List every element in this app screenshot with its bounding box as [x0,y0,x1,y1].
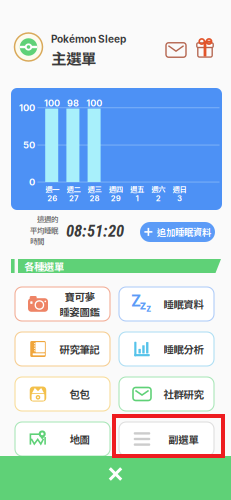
staticText: z [139,298,146,312]
staticText: 100 [86,98,102,109]
button[interactable]: 地圖 [15,422,110,456]
staticText: 3 [177,194,182,203]
staticText: 1 [135,194,138,203]
staticText: 寶可夢 [64,289,94,304]
staticText: 週六 [151,184,165,194]
staticText: 週二 [66,184,80,194]
staticText: 地圖 [69,431,89,447]
button[interactable]: Close [0,456,231,500]
staticText: 睡姿圖鑑 [59,304,99,319]
staticText: 包包 [69,386,89,402]
button[interactable]: 研究筆記 [15,332,110,366]
staticText: 週一 [45,184,59,194]
staticText: 28 [90,194,100,203]
staticText: 平均睡眠時間 [30,225,58,246]
button[interactable]: Gifts [194,38,216,60]
staticText: 研究筆記 [59,341,99,357]
staticText: 週三 [88,184,102,194]
staticText: 週四 [109,184,123,194]
staticText: 27 [69,194,78,203]
staticText: 副選單 [168,431,198,447]
button[interactable]: 追加睡眠資料 [140,222,215,242]
staticText: 50 [23,139,35,151]
staticText: 週日 [172,184,186,194]
staticText: 睡眠分析 [163,341,203,357]
staticText: 29 [111,194,121,203]
staticText: 26 [47,194,57,203]
button[interactable]: 副選單 [119,422,214,456]
staticText: 週五 [130,184,144,194]
button[interactable]: 包包 [15,377,110,411]
staticText: 98 [67,98,79,109]
button[interactable]: Mail [163,39,189,61]
staticText: 睡眠資料 [163,296,203,312]
staticText: 0 [29,176,35,188]
button[interactable]: Z [119,287,214,321]
button[interactable]: 寶可夢 [15,287,110,321]
staticText: 追加睡眠資料 [157,225,211,239]
staticText: 08:51:20 [66,221,124,241]
staticText: 主選單 [51,47,96,69]
staticText: 這週的 [37,213,58,224]
staticText: 社群研究 [163,386,203,402]
staticText: 2 [156,194,161,203]
button[interactable]: 睡眠分析 [119,332,214,366]
staticText: Z [131,291,141,310]
staticText: z [146,303,151,314]
staticText: 各種選單 [24,258,64,274]
button[interactable]: 社群研究 [119,377,214,411]
staticText: Pokémon Sleep [51,33,126,45]
staticText: 100 [19,102,35,114]
staticText: 100 [44,98,60,109]
